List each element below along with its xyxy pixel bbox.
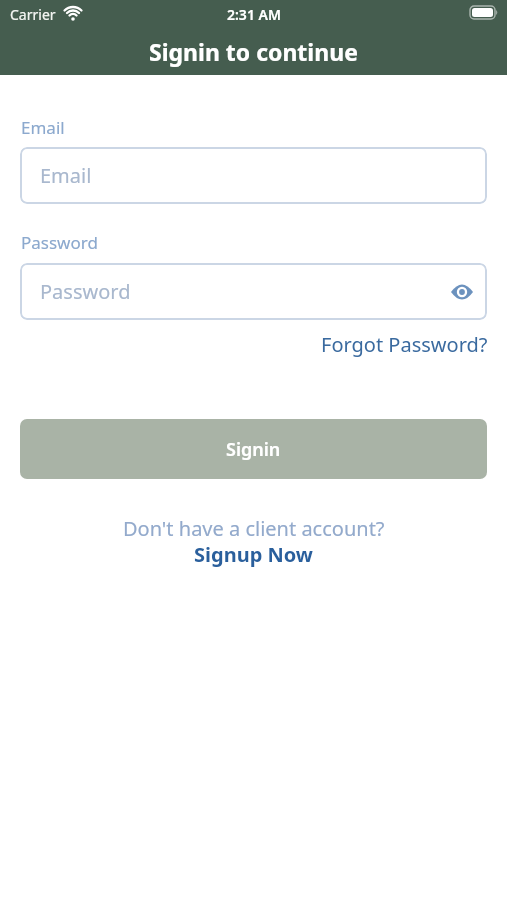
- staticText: Signin to continue: [149, 36, 358, 67]
- staticText: Signup Now: [194, 541, 313, 568]
- staticText: Carrier: [10, 5, 56, 24]
- staticText: Forgot Password?: [321, 331, 488, 358]
- staticText: 2:31 AM: [227, 5, 281, 24]
- staticText: Password: [21, 231, 98, 254]
- staticText: Password: [40, 278, 131, 305]
- staticText: Email: [21, 116, 65, 139]
- staticText: Email: [40, 162, 92, 189]
- staticText: Don't have a client account?: [123, 515, 385, 542]
- staticText: Signin: [226, 437, 281, 462]
